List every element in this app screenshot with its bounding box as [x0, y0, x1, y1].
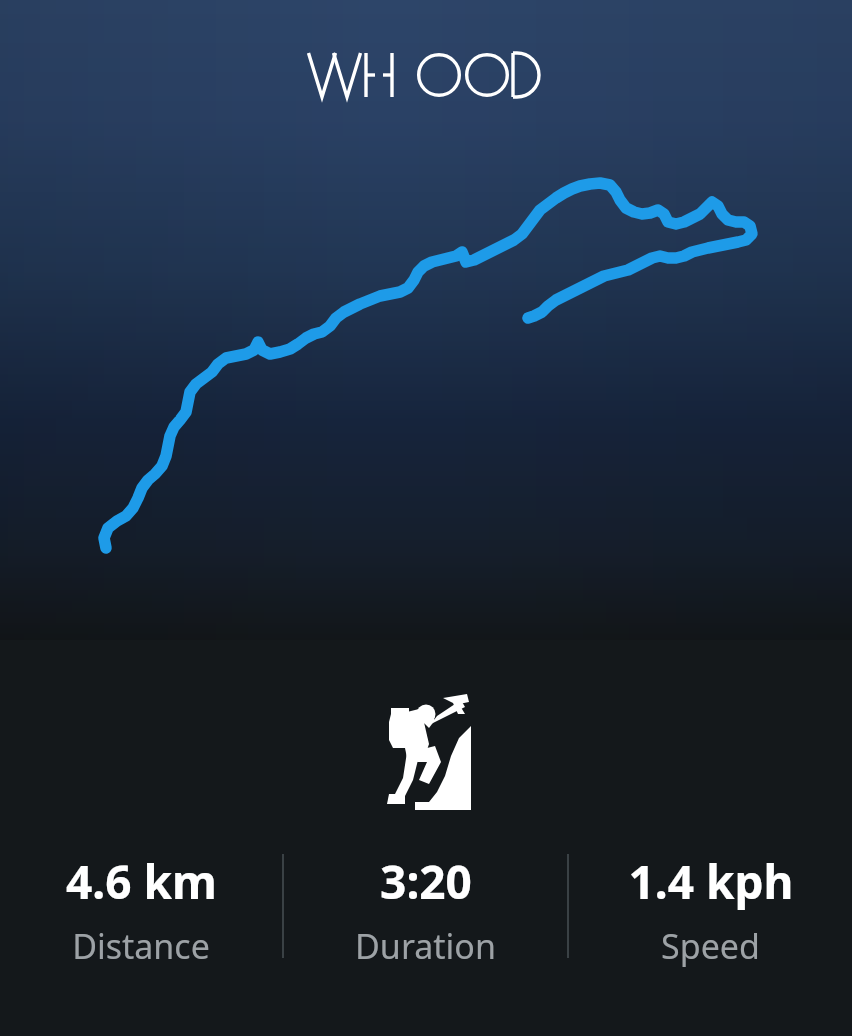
staticText: 3:20 [380, 850, 472, 913]
button[interactable]: WHOOP [307, 46, 545, 102]
button[interactable]: 4.6 km [0, 840, 282, 969]
staticText: Distance [72, 923, 210, 969]
staticText: Duration [355, 923, 496, 969]
staticText: Speed [661, 923, 760, 969]
button[interactable]: 3:20 [284, 840, 567, 969]
button[interactable]: 1.4 kph [569, 840, 852, 969]
staticText: 1.4 kph [628, 850, 794, 913]
staticText: 4.6 km [66, 850, 217, 913]
button[interactable]: Mountaineering activity [379, 688, 473, 812]
